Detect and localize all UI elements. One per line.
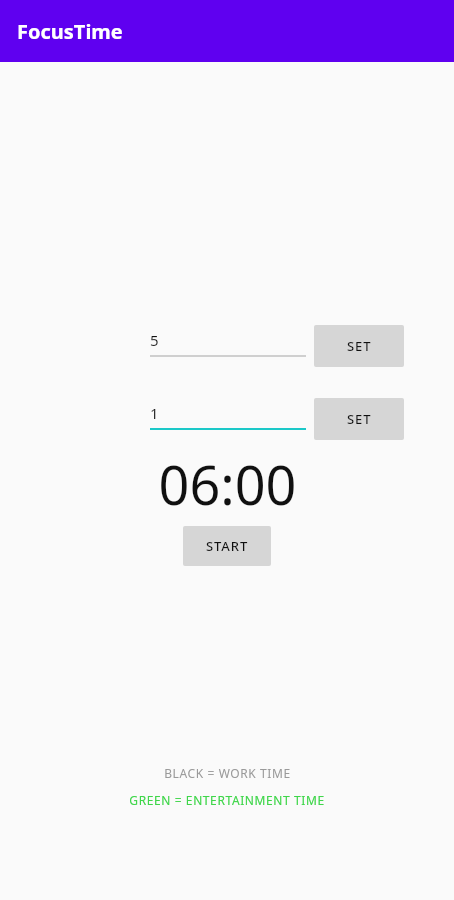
staticText: FocusTime xyxy=(17,18,123,45)
staticText: START xyxy=(206,537,249,555)
staticText: SET xyxy=(347,410,372,428)
staticText: SET xyxy=(347,337,372,355)
staticText: 1 xyxy=(150,403,159,423)
button[interactable]: 1 xyxy=(150,398,306,428)
button[interactable]: 5 xyxy=(150,325,306,355)
staticText: 06:00 xyxy=(158,447,297,511)
button[interactable]: SET xyxy=(314,398,404,440)
button[interactable]: START xyxy=(183,526,271,566)
button[interactable]: SET xyxy=(314,325,404,367)
staticText: GREEN = ENTERTAINMENT TIME xyxy=(129,792,325,808)
staticText: 5 xyxy=(150,330,159,350)
staticText: BLACK = WORK TIME xyxy=(164,765,291,781)
